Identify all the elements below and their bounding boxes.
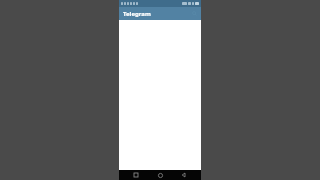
button[interactable]: Back xyxy=(177,170,191,180)
staticText: Telegram xyxy=(123,10,151,18)
button[interactable]: Telegram xyxy=(122,9,152,19)
button[interactable]: Recent apps xyxy=(129,170,143,180)
button[interactable]: Home xyxy=(153,170,167,180)
